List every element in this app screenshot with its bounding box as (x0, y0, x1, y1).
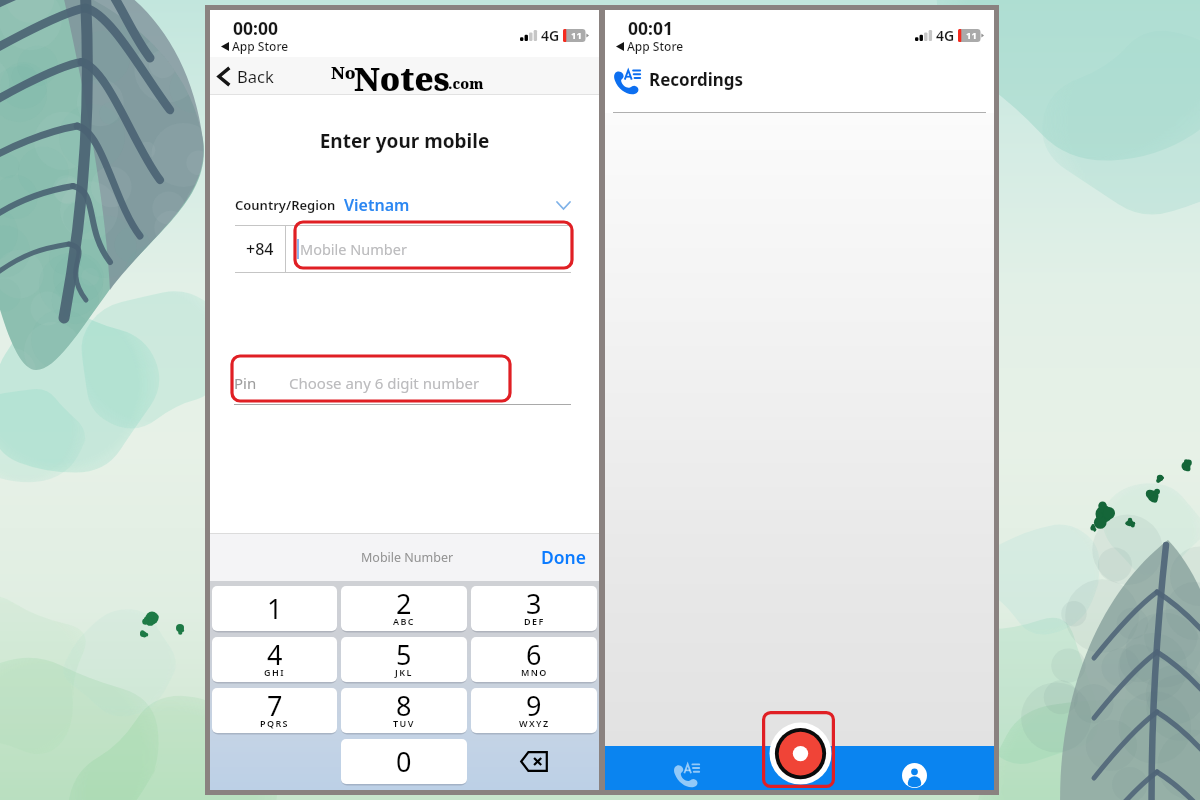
staticText: Vietnam (344, 194, 410, 216)
staticText: GHI (264, 666, 285, 678)
staticText: Choose any 6 digit number (289, 373, 480, 393)
staticText: 11 (966, 29, 977, 42)
staticText: 00:01 (628, 16, 673, 40)
staticText: WXYZ (519, 717, 550, 729)
staticText: Pin (234, 373, 257, 393)
button[interactable]: Account (864, 746, 994, 790)
staticText: Country/Region (235, 196, 336, 214)
button[interactable]: Country/Region (235, 194, 570, 216)
staticText: 9 (526, 688, 542, 724)
staticText: 00:00 (233, 16, 278, 40)
staticText: 4G (541, 26, 560, 45)
staticText: Mobile Number (361, 549, 454, 566)
staticText: 0 (396, 743, 412, 780)
staticText: 7 (267, 688, 283, 724)
staticText: JKL (395, 666, 413, 678)
staticText: Back (237, 65, 274, 87)
staticText: DEF (524, 615, 545, 627)
staticText: 11 (571, 29, 582, 42)
staticText: 5 (396, 637, 412, 673)
button[interactable]: 6 (471, 637, 597, 682)
button[interactable]: 4 (212, 637, 337, 682)
button[interactable]: 7 (212, 688, 337, 733)
button[interactable]: Done (541, 545, 587, 569)
staticText: PQRS (260, 717, 289, 729)
button[interactable]: 0 (341, 739, 467, 784)
button[interactable]: 1 (212, 586, 337, 631)
staticText: .com (448, 74, 484, 93)
staticText: Notes (354, 57, 450, 95)
staticText: No (331, 61, 356, 84)
button[interactable]: Delete (469, 736, 599, 787)
button[interactable]: Back (217, 65, 274, 87)
staticText: MNO (521, 666, 548, 678)
button[interactable]: 2 (341, 586, 467, 631)
button[interactable]: Record (762, 711, 835, 788)
staticText: +84 (246, 238, 274, 260)
button[interactable]: 5 (341, 637, 467, 682)
staticText: 1 (267, 590, 283, 627)
staticText: ABC (393, 615, 415, 627)
button[interactable]: 8 (341, 688, 467, 733)
staticText: TUV (393, 717, 415, 729)
staticText: 8 (396, 688, 412, 724)
staticText: 3 (526, 586, 542, 622)
staticText: App Store (232, 38, 289, 54)
button[interactable]: 3 (471, 586, 597, 631)
staticText: 4G (936, 26, 955, 45)
staticText: 4 (267, 637, 283, 673)
staticText: 2 (396, 586, 412, 622)
staticText: Mobile Number (300, 239, 407, 259)
button[interactable]: Mobile Number (286, 226, 571, 272)
staticText: Enter your mobile (210, 128, 599, 154)
staticText: 6 (526, 637, 542, 673)
button[interactable]: Pin (234, 362, 571, 404)
staticText: Recordings (649, 68, 744, 91)
button[interactable]: Recordings (605, 746, 734, 790)
staticText: App Store (627, 38, 684, 54)
button[interactable]: 9 (471, 688, 597, 733)
